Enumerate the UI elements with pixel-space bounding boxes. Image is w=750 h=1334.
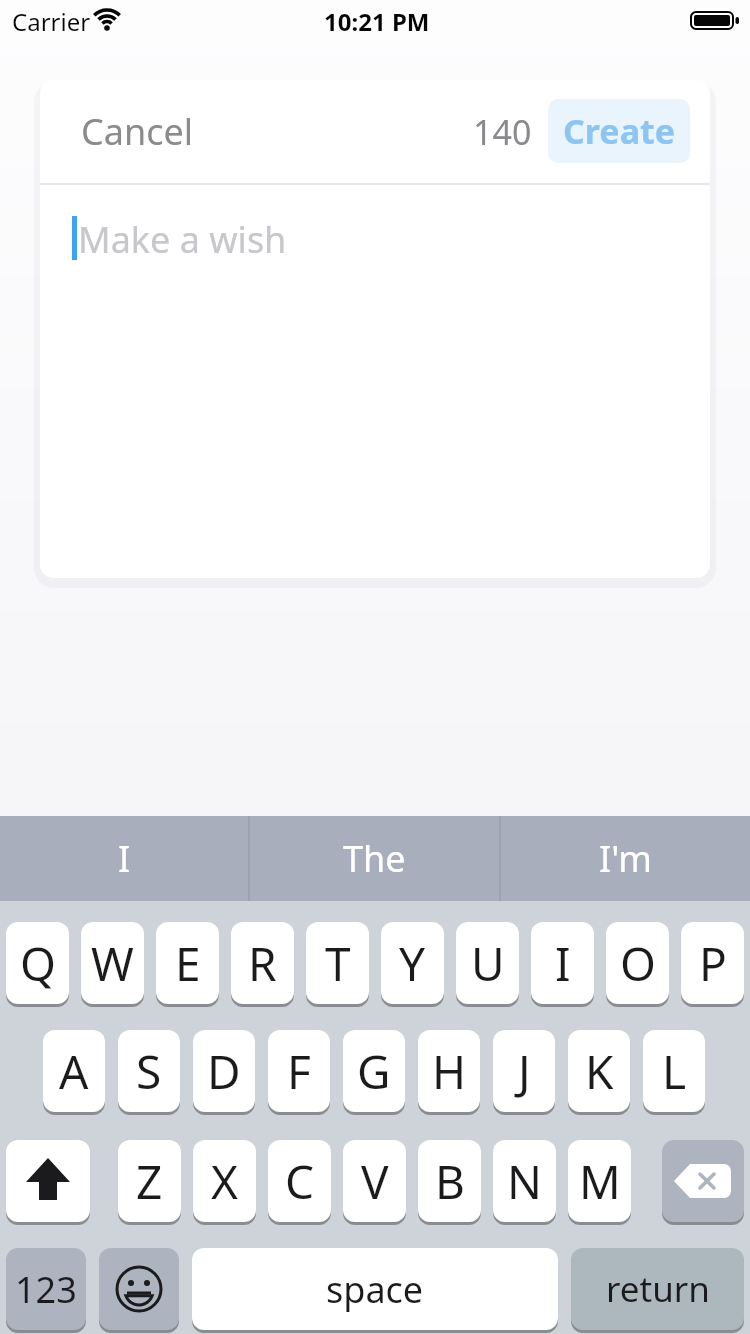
staticText: 123 <box>15 1265 77 1314</box>
button[interactable] <box>99 1248 179 1330</box>
staticText: return <box>606 1265 710 1313</box>
button[interactable]: C <box>268 1140 331 1222</box>
button[interactable]: A <box>43 1030 105 1112</box>
button[interactable]: O <box>606 922 669 1004</box>
staticText: Y <box>399 932 426 995</box>
button[interactable]: P <box>681 922 744 1004</box>
button[interactable]: Create <box>548 99 690 163</box>
staticText: J <box>518 1040 531 1103</box>
staticText: V <box>361 1150 389 1213</box>
button[interactable]: E <box>156 922 219 1004</box>
button[interactable]: W <box>81 922 144 1004</box>
staticText: I <box>555 932 571 995</box>
button[interactable]: H <box>418 1030 480 1112</box>
button[interactable]: K <box>568 1030 630 1112</box>
button[interactable]: The <box>250 816 499 901</box>
staticText: T <box>325 932 351 995</box>
button[interactable]: V <box>343 1140 406 1222</box>
button[interactable]: M <box>568 1140 631 1222</box>
button[interactable]: F <box>268 1030 330 1112</box>
staticText: Carrier <box>12 5 91 38</box>
button[interactable]: L <box>643 1030 705 1112</box>
button[interactable]: Z <box>118 1140 181 1222</box>
staticText: P <box>699 932 727 995</box>
staticText: I'm <box>599 834 652 883</box>
staticText: R <box>248 932 277 995</box>
button[interactable]: B <box>418 1140 481 1222</box>
button[interactable]: T <box>306 922 369 1004</box>
staticText: I <box>118 834 131 883</box>
staticText: 10:21 PM <box>324 5 430 38</box>
button[interactable]: G <box>343 1030 405 1112</box>
button[interactable]: 123 <box>6 1248 86 1330</box>
button[interactable]: space <box>192 1248 558 1330</box>
staticText: F <box>287 1040 311 1103</box>
button[interactable]: I'm <box>501 816 750 901</box>
staticText: Q <box>20 932 56 995</box>
staticText: Z <box>136 1150 163 1213</box>
staticText: B <box>435 1150 465 1213</box>
staticText: X <box>211 1150 238 1213</box>
staticText: G <box>357 1040 391 1103</box>
staticText: A <box>59 1040 89 1103</box>
staticText: Create <box>563 108 676 154</box>
staticText: U <box>471 932 505 995</box>
button[interactable]: J <box>493 1030 555 1112</box>
button[interactable]: R <box>231 922 294 1004</box>
button[interactable]: X <box>193 1140 256 1222</box>
staticText: K <box>585 1040 614 1103</box>
staticText: S <box>136 1040 162 1103</box>
staticText: space <box>326 1265 424 1314</box>
staticText: Make a wish <box>78 215 287 264</box>
staticText: Cancel <box>81 107 194 156</box>
button[interactable]: return <box>571 1248 744 1330</box>
staticText: The <box>343 834 406 883</box>
button[interactable] <box>662 1140 744 1222</box>
button[interactable]: Y <box>381 922 444 1004</box>
button[interactable]: Cancel <box>81 80 194 183</box>
staticText: N <box>507 1150 542 1213</box>
staticText: 140 <box>473 109 532 155</box>
button[interactable]: D <box>193 1030 255 1112</box>
button[interactable]: N <box>493 1140 556 1222</box>
staticText: D <box>207 1040 241 1103</box>
staticText: H <box>432 1040 467 1103</box>
button[interactable] <box>6 1140 90 1222</box>
staticText: L <box>662 1040 687 1103</box>
staticText: O <box>620 932 656 995</box>
button[interactable]: S <box>118 1030 180 1112</box>
button[interactable]: I <box>0 816 248 901</box>
button[interactable]: Q <box>6 922 69 1004</box>
button[interactable]: I <box>531 922 594 1004</box>
staticText: M <box>579 1150 621 1213</box>
button[interactable]: U <box>456 922 519 1004</box>
staticText: C <box>285 1150 315 1213</box>
staticText: E <box>175 932 201 995</box>
staticText: W <box>91 932 134 995</box>
button[interactable] <box>40 185 710 578</box>
